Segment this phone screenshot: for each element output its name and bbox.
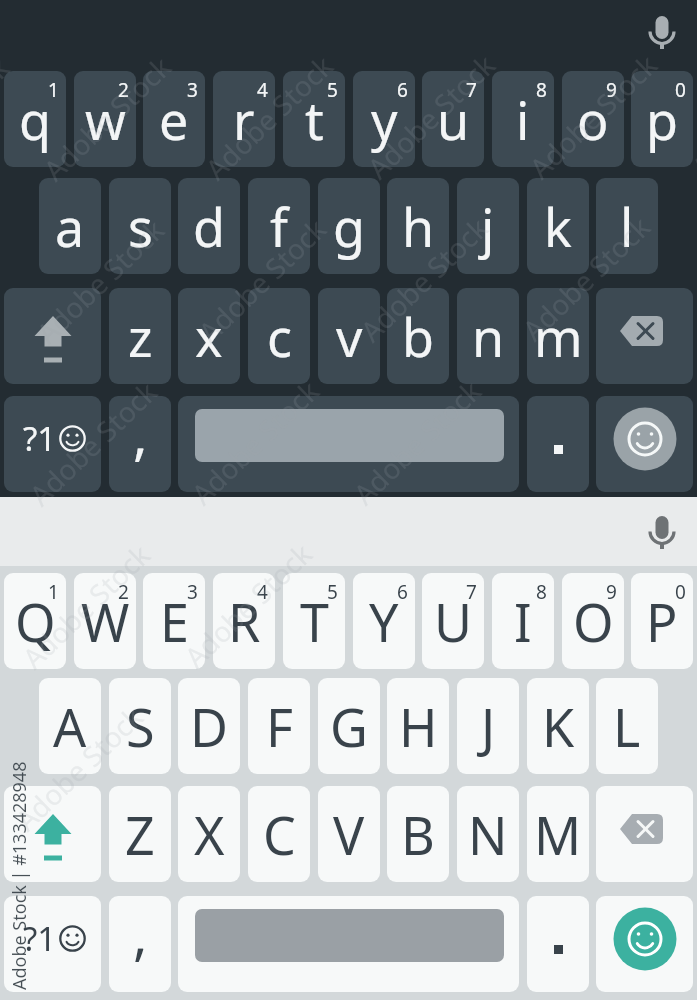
button[interactable]: i	[492, 71, 554, 167]
staticText: W	[81, 586, 130, 657]
button[interactable]: ?1	[4, 896, 101, 992]
button[interactable]: G	[318, 678, 380, 774]
button[interactable]: J	[457, 678, 519, 774]
staticText: 0	[675, 77, 686, 103]
button[interactable]	[596, 288, 693, 384]
staticText: q	[19, 84, 51, 155]
staticText: Adobe Stock	[21, 372, 165, 514]
button[interactable]: a	[39, 178, 101, 274]
button[interactable]: W	[74, 573, 136, 669]
button[interactable]: P	[631, 573, 693, 669]
button[interactable]: D	[178, 678, 240, 774]
button[interactable]: c	[248, 288, 310, 384]
staticText: 4	[257, 77, 268, 103]
staticText: Adobe Stock	[345, 371, 489, 513]
button[interactable]: ,	[109, 896, 171, 992]
staticText: P	[646, 586, 678, 657]
button[interactable]: z	[109, 288, 171, 384]
button[interactable]: p	[631, 71, 693, 167]
button[interactable]: C	[248, 786, 310, 882]
staticText: f	[270, 191, 288, 262]
button[interactable]: m	[527, 288, 589, 384]
staticText: L	[613, 691, 641, 762]
button[interactable]: l	[596, 178, 658, 274]
button[interactable]: M	[527, 786, 589, 882]
staticText: t	[305, 84, 324, 155]
button[interactable]	[178, 896, 519, 992]
button[interactable]: H	[387, 678, 449, 774]
button[interactable]: ?1	[4, 396, 101, 492]
button[interactable]: t	[283, 71, 345, 167]
button[interactable]: X	[178, 786, 240, 882]
staticText: Adobe Stock	[7, 697, 151, 839]
button[interactable]: b	[387, 288, 449, 384]
button[interactable]: q	[4, 71, 66, 167]
button[interactable]: g	[318, 178, 380, 274]
button[interactable]: F	[248, 678, 310, 774]
staticText: 3	[187, 579, 198, 605]
button[interactable]: e	[143, 71, 205, 167]
button[interactable]	[4, 786, 101, 882]
staticText: i	[516, 84, 530, 155]
button[interactable]: Q	[4, 573, 66, 669]
staticText: 7	[466, 579, 477, 605]
button[interactable]: y	[353, 71, 415, 167]
button[interactable]: T	[283, 573, 345, 669]
staticText: Z	[125, 799, 155, 870]
staticText: U	[434, 586, 473, 657]
staticText: J	[481, 691, 496, 762]
button[interactable]: o	[562, 71, 624, 167]
button[interactable]: r	[213, 71, 275, 167]
staticText: n	[472, 301, 505, 372]
button[interactable]: O	[562, 573, 624, 669]
button[interactable]: f	[248, 178, 310, 274]
button[interactable]	[527, 896, 589, 992]
button[interactable]: v	[318, 288, 380, 384]
staticText: Adobe Stock | #133428948	[7, 761, 32, 990]
staticText: s	[128, 191, 153, 262]
button[interactable]: N	[457, 786, 519, 882]
button[interactable]: u	[422, 71, 484, 167]
button[interactable]: U	[422, 573, 484, 669]
staticText: v	[336, 301, 363, 372]
staticText: ?1	[23, 916, 57, 961]
button[interactable]: d	[178, 178, 240, 274]
staticText: E	[160, 586, 189, 657]
staticText: a	[55, 191, 85, 262]
button[interactable]: x	[178, 288, 240, 384]
button[interactable]	[596, 786, 693, 882]
staticText: b	[402, 301, 434, 372]
button[interactable]: n	[457, 288, 519, 384]
button[interactable]: Y	[353, 573, 415, 669]
button[interactable]: ,	[109, 396, 171, 492]
button[interactable]: B	[387, 786, 449, 882]
button[interactable]: V	[318, 786, 380, 882]
staticText: Adobe Stock	[190, 209, 334, 351]
staticText: Adobe Stock	[0, 48, 17, 190]
staticText: 2	[118, 579, 129, 605]
button[interactable]: Z	[109, 786, 171, 882]
button[interactable]: j	[457, 178, 519, 274]
button[interactable]: w	[74, 71, 136, 167]
button[interactable]: s	[109, 178, 171, 274]
staticText: Adobe Stock	[359, 45, 503, 187]
button[interactable]	[527, 396, 589, 492]
staticText: Q	[15, 586, 56, 657]
button[interactable]: S	[109, 678, 171, 774]
button[interactable]: E	[143, 573, 205, 669]
button[interactable]	[596, 396, 693, 492]
button[interactable]: h	[387, 178, 449, 274]
staticText: M	[534, 799, 582, 870]
button[interactable]: L	[596, 678, 658, 774]
staticText: I	[514, 586, 532, 657]
button[interactable]: K	[527, 678, 589, 774]
button[interactable]	[178, 396, 519, 492]
button[interactable]: k	[527, 178, 589, 274]
staticText: C	[263, 799, 296, 870]
button[interactable]: R	[213, 573, 275, 669]
staticText: ?1	[23, 416, 57, 461]
button[interactable]	[596, 896, 693, 992]
button[interactable]: I	[492, 573, 554, 669]
button[interactable]: A	[39, 678, 101, 774]
button[interactable]	[4, 288, 101, 384]
